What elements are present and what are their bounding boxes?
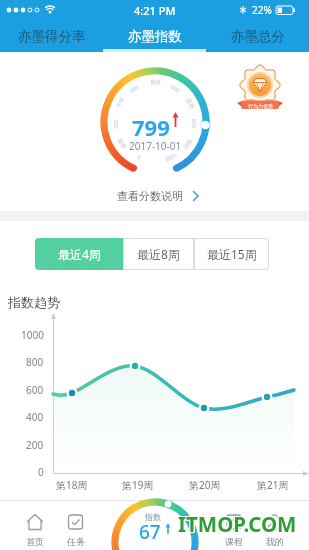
- staticText: 22%: [252, 3, 272, 17]
- button[interactable]: 课程: [209, 506, 259, 548]
- staticText: ITMOP.COM: [178, 509, 297, 537]
- staticText: 指数趋势: [8, 294, 60, 310]
- staticText: ITMOP.COM: [177, 509, 296, 537]
- button[interactable]: 亦墨指数: [103, 20, 206, 52]
- button[interactable]: 最近4周: [35, 238, 123, 270]
- button[interactable]: 任务: [51, 506, 101, 548]
- button[interactable]: 首页: [10, 506, 60, 548]
- staticText: 0: [135, 153, 141, 161]
- button[interactable]: [115, 500, 195, 550]
- staticText: 800: [191, 119, 198, 129]
- staticText: ITMOP.COM: [177, 510, 296, 538]
- button[interactable]: 亦墨得分率: [0, 20, 103, 52]
- staticText: 亦墨总分: [231, 28, 285, 45]
- button[interactable]: 最近8周: [123, 238, 194, 270]
- staticText: 第20周: [189, 478, 221, 491]
- staticText: ITMOP.COM: [179, 511, 298, 539]
- staticText: 400: [26, 410, 44, 423]
- staticText: 2017-10-01: [129, 139, 182, 153]
- staticText: 1000: [21, 328, 44, 341]
- staticText: 400: [128, 83, 140, 94]
- staticText: 200: [112, 119, 119, 129]
- staticText: 我的: [266, 536, 284, 547]
- staticText: 799: [132, 112, 170, 140]
- staticText: 第19周: [122, 478, 154, 491]
- button[interactable]: 我的: [250, 506, 300, 548]
- button[interactable]: 亦墨总分: [206, 20, 309, 52]
- staticText: 很差: [116, 137, 128, 150]
- staticText: 良好: [150, 79, 161, 86]
- staticText: 600: [26, 383, 44, 396]
- staticText: 查看分数说明: [117, 189, 183, 203]
- staticText: 亦墨得分率: [18, 28, 86, 45]
- staticText: 首页: [26, 536, 44, 547]
- staticText: 指数: [145, 512, 161, 522]
- staticText: 很好: [181, 138, 193, 151]
- staticText: ITMOP.COM: [178, 511, 297, 539]
- staticText: 最近15周: [207, 246, 257, 262]
- staticText: ITMOP.COM: [179, 509, 298, 537]
- staticText: 67: [139, 519, 161, 543]
- staticText: 任务: [67, 536, 85, 547]
- staticText: 800: [26, 355, 44, 368]
- staticText: 优秀: [184, 97, 195, 110]
- button[interactable]: 最近15周: [194, 238, 269, 270]
- staticText: 0: [38, 465, 44, 478]
- staticText: 课程: [225, 536, 243, 547]
- staticText: 200: [26, 438, 44, 451]
- staticText: 中等: [115, 96, 126, 109]
- button[interactable]: 查看分数说明: [110, 188, 190, 204]
- staticText: ITMOP.COM: [177, 511, 296, 539]
- staticText: 4:21 PM: [134, 3, 176, 18]
- staticText: 第18周: [56, 478, 88, 491]
- staticText: 亦墨指数: [128, 28, 182, 45]
- staticText: 1000: [164, 152, 179, 164]
- staticText: ITMOP.COM: [179, 510, 298, 538]
- staticText: 行为力优秀: [248, 103, 273, 109]
- staticText: ITMOP.COM: [178, 510, 297, 538]
- staticText: 最近8周: [137, 246, 180, 262]
- staticText: 最近4周: [58, 246, 101, 262]
- staticText: 第21周: [257, 478, 289, 491]
- staticText: 600: [170, 83, 182, 94]
